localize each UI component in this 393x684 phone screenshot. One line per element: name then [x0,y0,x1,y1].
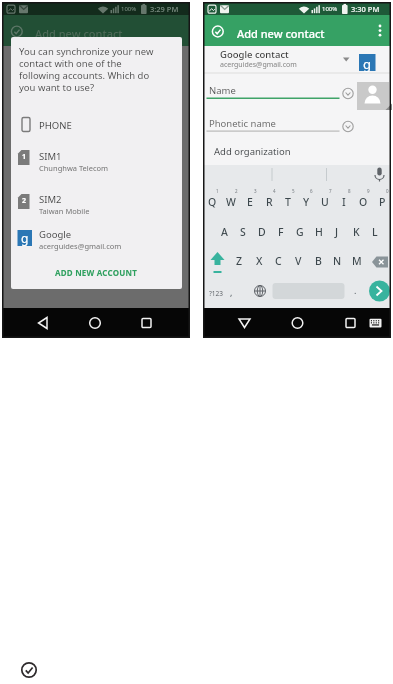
staticText: W [226,195,236,209]
button[interactable]: X [250,249,268,273]
button[interactable]: B [309,249,327,273]
button[interactable] [203,15,391,46]
button[interactable] [203,47,391,75]
button[interactable] [203,308,391,338]
button[interactable] [21,662,37,678]
button[interactable] [11,109,182,139]
staticText: F [278,225,284,239]
staticText: 8 [348,188,351,194]
button[interactable] [206,142,340,160]
staticText: L [372,225,378,239]
staticText: 6 [310,188,313,194]
staticText: Add new contact [35,26,123,41]
button[interactable] [206,113,340,134]
staticText: S [240,225,246,239]
staticText: Q [208,195,217,209]
staticText: 100% [322,5,338,13]
staticText: P [379,195,386,209]
staticText: 2 [235,188,238,194]
staticText: A [221,225,228,239]
staticText: I [342,195,346,209]
button[interactable]: J [328,220,346,244]
button[interactable]: K [347,220,365,244]
button[interactable]: ADD NEW ACCOUNT [45,262,147,282]
staticText: X [256,254,263,268]
button[interactable]: E [241,190,259,214]
button[interactable]: H [310,220,328,244]
staticText: 7 [329,188,332,194]
staticText: 1 [22,152,27,162]
button[interactable]: P [373,190,391,214]
staticText: H [315,225,323,239]
staticText: You can synchronize your new contact wit… [19,45,154,94]
staticText: SIM1 [39,150,62,163]
staticText: ADD NEW ACCOUNT [55,267,137,278]
staticText: J [335,225,339,239]
staticText: K [353,225,360,239]
staticText: 3:30 PM [351,4,380,14]
button[interactable]: L [366,220,384,244]
staticText: 1 [216,188,219,194]
staticText: 3:29 PM [150,4,179,14]
staticText: acerguides@gmail.com [220,60,297,70]
staticText: Google [39,228,72,241]
button[interactable] [206,80,340,101]
staticText: N [333,254,342,268]
button[interactable]: C [269,249,287,273]
button[interactable]: N [328,249,346,273]
staticText: g [363,55,371,73]
button[interactable]: D [253,220,271,244]
button[interactable]: O [354,190,372,214]
staticText: 100% [121,5,137,13]
button[interactable]: G [291,220,309,244]
button[interactable] [2,308,190,338]
staticText: Phonetic name [209,117,276,130]
button[interactable]: Z [230,249,248,273]
staticText: 5 [292,188,295,194]
button[interactable]: I [335,190,353,214]
button[interactable]: A [215,220,233,244]
button[interactable]: U [316,190,334,214]
staticText: 0 [386,188,389,194]
staticText: 9 [367,188,370,194]
staticText: D [258,225,266,239]
staticText: SIM2 [39,193,62,206]
staticText: Y [303,195,310,209]
staticText: O [359,195,368,209]
staticText: acerguides@gmail.com [39,241,122,251]
button[interactable] [11,187,182,221]
button[interactable]: Y [297,190,315,214]
staticText: g [21,230,29,246]
staticText: Chunghwa Telecom [39,163,109,173]
staticText: V [295,254,302,268]
staticText: M [352,254,362,268]
staticText: . [354,284,357,296]
staticText: Taiwan Mobile [39,206,90,216]
button[interactable]: R [260,190,278,214]
button[interactable] [11,143,182,177]
button[interactable]: W [222,190,240,214]
staticText: Z [236,254,243,268]
staticText: Add new contact [237,26,325,41]
staticText: 4 [273,188,276,194]
staticText: 2 [22,196,27,206]
button[interactable]: V [289,249,307,273]
button[interactable]: M [348,249,366,273]
staticText: R [266,195,273,209]
button[interactable]: S [234,220,252,244]
staticText: T [285,195,291,209]
button[interactable]: T [279,190,297,214]
button[interactable] [11,225,182,261]
button[interactable]: Q [203,190,221,214]
staticText: C [275,254,282,268]
staticText: 3 [254,188,257,194]
staticText: G [296,225,304,239]
button[interactable] [357,82,389,110]
staticText: Google contact [220,48,289,61]
staticText: ?123 [209,289,223,298]
staticText: U [321,195,329,209]
staticText: PHONE [39,119,72,132]
button[interactable]: F [272,220,290,244]
staticText: , [230,286,233,298]
staticText: B [315,254,322,268]
